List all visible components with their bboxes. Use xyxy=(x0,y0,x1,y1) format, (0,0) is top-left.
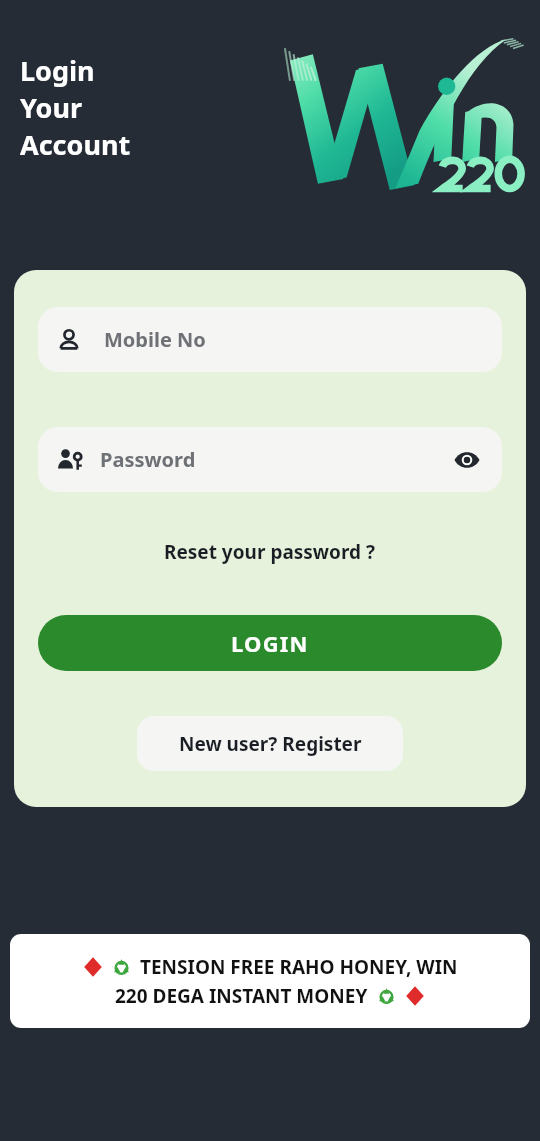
button[interactable]: Show password xyxy=(450,443,484,477)
button[interactable]: Password xyxy=(38,427,502,492)
button[interactable]: LOGIN xyxy=(38,615,502,671)
staticText: 220 DEGA INSTANT MONEY xyxy=(115,983,368,1009)
staticText: Login xyxy=(20,52,95,89)
staticText: Password xyxy=(100,446,196,473)
staticText: Your xyxy=(20,89,83,126)
button[interactable]: Mobile No xyxy=(38,307,502,372)
staticText: Account xyxy=(20,126,131,163)
staticText: LOGIN xyxy=(231,628,309,658)
staticText: TENSION FREE RAHO HONEY, WIN xyxy=(140,954,458,980)
staticText: Mobile No xyxy=(104,326,206,353)
button[interactable]: Reset your password ? xyxy=(14,532,526,572)
button[interactable]: TENSION FREE RAHO HONEY, WIN xyxy=(10,934,530,1028)
button[interactable]: New user? Register xyxy=(137,716,403,771)
staticText: New user? Register xyxy=(179,731,362,757)
staticText: Reset your password ? xyxy=(164,539,376,565)
